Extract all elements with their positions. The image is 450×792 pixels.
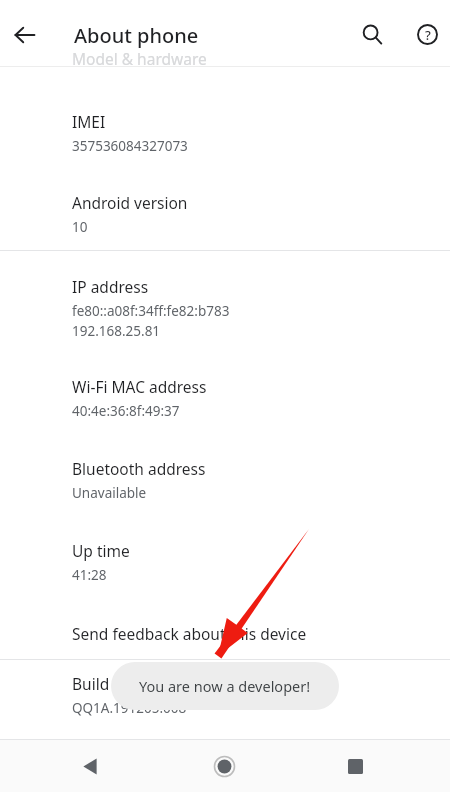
- staticText: 10: [72, 218, 88, 236]
- staticText: 41:28: [72, 566, 107, 584]
- staticText: Send feedback about this device: [72, 623, 307, 644]
- staticText: Android version: [72, 192, 188, 213]
- staticText: Model & hardware: [72, 48, 207, 69]
- button[interactable]: Build number: [0, 659, 450, 739]
- button[interactable]: Help: [406, 13, 448, 55]
- button[interactable]: Home: [202, 740, 246, 792]
- button[interactable]: Wi-Fi MAC address: [0, 365, 450, 435]
- staticText: Up time: [72, 540, 130, 561]
- button[interactable]: IMEI: [0, 100, 450, 170]
- staticText: 192.168.25.81: [72, 322, 161, 340]
- button[interactable]: Android version: [0, 181, 450, 247]
- button[interactable]: Up time: [0, 529, 450, 599]
- staticText: Unavailable: [72, 484, 147, 502]
- staticText: You are now a developer!: [139, 676, 311, 696]
- staticText: QQ1A.191205.008: [72, 699, 187, 717]
- staticText: fe80::a08f:34ff:fe82:b783: [72, 302, 230, 320]
- staticText: Bluetooth address: [72, 458, 206, 479]
- button[interactable]: Search: [351, 13, 393, 55]
- button[interactable]: Bluetooth address: [0, 447, 450, 517]
- staticText: IP address: [72, 276, 149, 297]
- staticText: IMEI: [72, 111, 106, 132]
- button[interactable]: IP address: [0, 265, 450, 357]
- button[interactable]: Model & hardware: [72, 48, 207, 69]
- button[interactable]: Send feedback about this device: [0, 607, 450, 659]
- button[interactable]: Back: [4, 14, 46, 56]
- staticText: ?: [425, 26, 431, 44]
- staticText: About phone: [74, 22, 199, 49]
- staticText: Build number: [72, 673, 172, 694]
- button[interactable]: Recent apps: [333, 740, 377, 792]
- staticText: 357536084327073: [72, 137, 188, 155]
- staticText: 40:4e:36:8f:49:37: [72, 402, 180, 420]
- staticText: Wi-Fi MAC address: [72, 376, 207, 397]
- button[interactable]: Back: [68, 740, 112, 792]
